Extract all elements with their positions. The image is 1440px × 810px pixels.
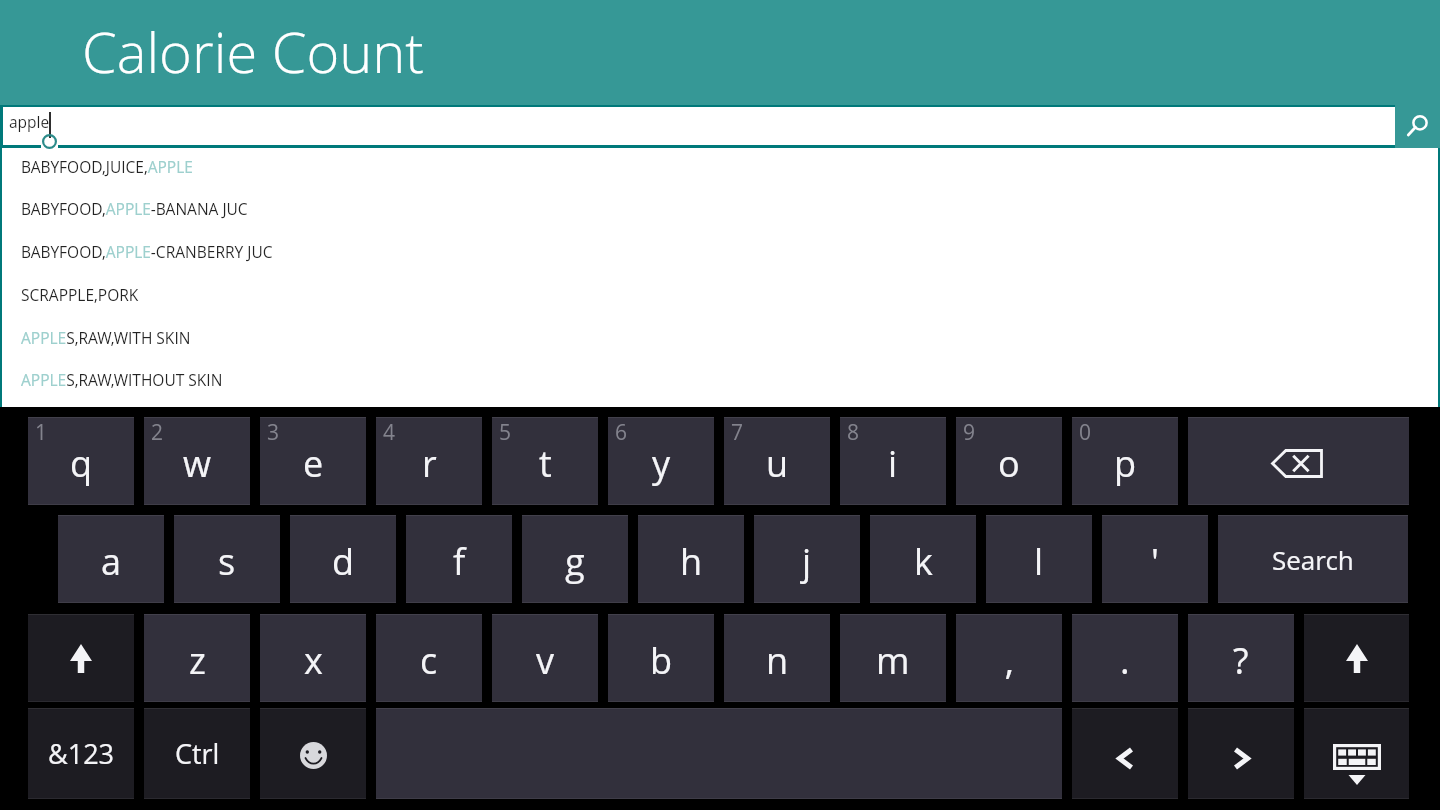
button[interactable]: SCRAPPLE,PORK — [0, 273, 1440, 315]
staticText: a — [101, 537, 122, 586]
staticText: 5 — [499, 418, 512, 447]
button[interactable]: APPLES,RAW,WITH SKIN — [0, 316, 1440, 358]
button[interactable]: BABYFOOD,JUICE,APPLE — [0, 145, 1440, 187]
staticText: m — [876, 636, 910, 685]
button[interactable]: 2 — [144, 417, 250, 505]
button[interactable]: Hide keyboard — [1304, 708, 1409, 799]
staticText: . — [1120, 636, 1130, 685]
button[interactable]: k — [870, 515, 976, 603]
staticText: BABYFOOD,APPLE-CRANBERRY JUC — [21, 241, 273, 262]
staticText: 1 — [35, 418, 48, 447]
button[interactable]: z — [144, 614, 250, 702]
button[interactable]: Emoji — [260, 708, 366, 799]
staticText: Calorie Count — [82, 13, 425, 89]
button[interactable]: b — [608, 614, 714, 702]
button[interactable]: j — [754, 515, 860, 603]
staticText: 7 — [731, 418, 744, 447]
button[interactable]: 8 — [840, 417, 946, 505]
button[interactable]: 9 — [956, 417, 1062, 505]
button[interactable]: 3 — [260, 417, 366, 505]
staticText: 4 — [383, 418, 396, 447]
button[interactable]: c — [376, 614, 482, 702]
button[interactable]: 5 — [492, 417, 598, 505]
staticText: Search — [1272, 542, 1354, 577]
staticText: o — [998, 439, 1020, 488]
button[interactable]: Shift — [1304, 614, 1409, 702]
staticText: b — [650, 636, 673, 685]
button[interactable]: f — [406, 515, 512, 603]
staticText: u — [766, 439, 789, 488]
staticText: d — [332, 537, 355, 586]
staticText: x — [304, 636, 323, 685]
staticText: ? — [1233, 636, 1249, 685]
staticText: e — [303, 439, 324, 488]
staticText: ' — [1151, 537, 1159, 586]
button[interactable]: Move cursor left — [1072, 708, 1178, 799]
staticText: 9 — [963, 418, 976, 447]
staticText: APPLES,RAW,WITHOUT SKIN — [21, 369, 223, 390]
staticText: w — [183, 439, 212, 488]
button[interactable]: apple — [3, 107, 1395, 145]
button[interactable]: 1 — [28, 417, 134, 505]
staticText: y — [652, 439, 671, 488]
button[interactable]: m — [840, 614, 946, 702]
button[interactable]: Search — [1395, 105, 1440, 148]
button[interactable]: d — [290, 515, 396, 603]
button[interactable]: Ctrl — [144, 708, 250, 799]
button[interactable]: n — [724, 614, 830, 702]
button[interactable]: ' — [1102, 515, 1208, 603]
staticText: j — [802, 537, 812, 586]
button[interactable]: g — [522, 515, 628, 603]
button[interactable]: h — [638, 515, 744, 603]
staticText: f — [453, 537, 466, 586]
staticText: 3 — [267, 418, 280, 447]
button[interactable]: s — [174, 515, 280, 603]
staticText: , — [1005, 636, 1014, 685]
staticText: &123 — [48, 735, 115, 772]
staticText: n — [766, 636, 789, 685]
button[interactable]: l — [986, 515, 1092, 603]
staticText: 2 — [151, 418, 164, 447]
button[interactable]: Shift — [28, 614, 134, 702]
staticText: q — [70, 439, 93, 488]
staticText: p — [1114, 439, 1137, 488]
staticText: 6 — [615, 418, 628, 447]
button[interactable]: v — [492, 614, 598, 702]
staticText: l — [1034, 537, 1044, 586]
staticText: t — [539, 439, 552, 488]
staticText: APPLES,RAW,WITH SKIN — [21, 327, 191, 348]
staticText: h — [680, 537, 703, 586]
staticText: v — [536, 636, 555, 685]
staticText: BABYFOOD,JUICE,APPLE — [21, 156, 193, 177]
button[interactable]: 6 — [608, 417, 714, 505]
button[interactable]: APPLES,RAW,WITHOUT SKIN — [0, 358, 1440, 400]
button[interactable]: 4 — [376, 417, 482, 505]
staticText: g — [565, 537, 585, 586]
button[interactable]: BABYFOOD,APPLE-BANANA JUC — [0, 187, 1440, 229]
staticText: apple — [9, 111, 50, 132]
button[interactable]: ? — [1188, 614, 1294, 702]
button[interactable]: a — [58, 515, 164, 603]
staticText: r — [422, 439, 437, 488]
button[interactable]: x — [260, 614, 366, 702]
staticText: i — [888, 439, 898, 488]
button[interactable]: Move cursor right — [1188, 708, 1294, 799]
button[interactable]: Backspace — [1188, 417, 1409, 505]
staticText: c — [420, 636, 438, 685]
button[interactable]: Search — [1218, 515, 1408, 603]
staticText: s — [218, 537, 236, 586]
button[interactable]: . — [1072, 614, 1178, 702]
staticText: k — [914, 537, 933, 586]
staticText: BABYFOOD,APPLE-BANANA JUC — [21, 198, 248, 219]
button[interactable]: , — [956, 614, 1062, 702]
button[interactable]: 7 — [724, 417, 830, 505]
staticText: 8 — [847, 418, 860, 447]
button[interactable]: BABYFOOD,APPLE-CRANBERRY JUC — [0, 230, 1440, 272]
button[interactable]: 0 — [1072, 417, 1178, 505]
button[interactable]: &123 — [28, 708, 134, 799]
staticText: 0 — [1079, 418, 1092, 447]
staticText: Ctrl — [175, 735, 220, 772]
staticText: z — [189, 636, 206, 685]
staticText: SCRAPPLE,PORK — [21, 284, 139, 305]
